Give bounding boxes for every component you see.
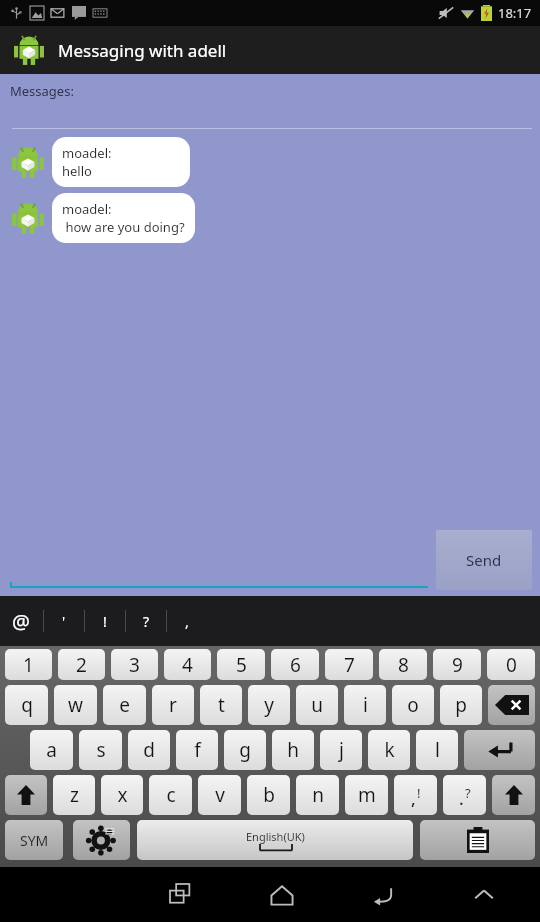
button[interactable]: u (296, 685, 338, 725)
staticText: h (287, 737, 299, 763)
button[interactable]: j (320, 730, 362, 770)
staticText: @ (12, 608, 30, 635)
button[interactable]: k (368, 730, 410, 770)
button[interactable]: x (101, 775, 143, 815)
button[interactable]: 8 (379, 649, 427, 680)
staticText: p (455, 692, 467, 718)
button[interactable]: Clipboard (420, 820, 535, 860)
button[interactable]: , (180, 612, 194, 631)
button[interactable]: m (345, 775, 388, 815)
staticText: u (311, 692, 323, 718)
staticText: g (239, 737, 251, 763)
staticText: n (312, 782, 324, 808)
staticText: a (46, 737, 57, 763)
staticText: w (68, 692, 83, 718)
button[interactable]: l (416, 730, 458, 770)
staticText: 0 (506, 652, 517, 678)
button[interactable]: r (152, 685, 194, 725)
button[interactable]: Settings (73, 820, 130, 860)
button[interactable]: f (176, 730, 218, 770)
staticText: 1 (23, 652, 34, 678)
button[interactable]: n (296, 775, 339, 815)
staticText: SYM (20, 831, 49, 850)
button[interactable]: 2 (58, 649, 105, 680)
staticText: z (70, 782, 79, 808)
button[interactable]: 1 (5, 649, 52, 680)
staticText: moadel: (62, 144, 112, 162)
button[interactable]: Recents (130, 867, 231, 922)
button[interactable]: ? (139, 612, 153, 631)
staticText: 3 (129, 652, 140, 678)
staticText: m (358, 782, 376, 808)
button[interactable]: Shift (5, 775, 47, 815)
staticText: y (264, 692, 274, 718)
button[interactable]: 5 (217, 649, 265, 680)
button[interactable]: h (272, 730, 314, 770)
button[interactable]: Expand (433, 867, 534, 922)
button[interactable]: c (149, 775, 192, 815)
staticText: ? (143, 612, 150, 631)
button[interactable]: Symbols (5, 820, 63, 860)
button[interactable]: s (79, 730, 122, 770)
button[interactable]: i (344, 685, 386, 725)
button[interactable]: y (248, 685, 290, 725)
button[interactable]: b (247, 775, 290, 815)
staticText: ! (103, 612, 107, 631)
staticText: , (411, 787, 416, 810)
button[interactable]: Shift (492, 775, 535, 815)
staticText: Messaging with adell (58, 39, 227, 62)
staticText: j (339, 737, 344, 763)
staticText: t (218, 692, 225, 718)
staticText: k (384, 737, 395, 763)
button[interactable]: Back (332, 867, 433, 922)
staticText: 4 (182, 652, 193, 678)
button[interactable]: Home (231, 867, 332, 922)
button[interactable]: q (5, 685, 48, 725)
button[interactable]: v (198, 775, 241, 815)
staticText: 8 (398, 652, 409, 678)
staticText: e (119, 692, 130, 718)
button[interactable]: ! (98, 612, 112, 631)
staticText: how are you doing? (62, 218, 185, 236)
staticText: l (435, 737, 440, 763)
button[interactable]: z (53, 775, 95, 815)
button[interactable]: e (103, 685, 146, 725)
button[interactable]: 0 (487, 649, 535, 680)
staticText: q (21, 692, 33, 718)
staticText: ? (465, 784, 471, 802)
staticText: moadel: (62, 200, 112, 218)
staticText: s (96, 737, 106, 763)
staticText: x (117, 782, 128, 808)
button[interactable]: 9 (433, 649, 481, 680)
button[interactable]: p (440, 685, 482, 725)
staticText: 7 (344, 652, 355, 678)
button[interactable]: d (128, 730, 170, 770)
staticText: 18:17 (498, 4, 532, 22)
staticText: 9 (452, 652, 463, 678)
button[interactable]: t (200, 685, 242, 725)
button[interactable]: g (224, 730, 266, 770)
staticText: i (363, 692, 368, 718)
button[interactable]: Enter (464, 730, 535, 770)
staticText: hello (62, 162, 92, 180)
staticText: English(UK) (246, 829, 305, 844)
button[interactable]: 6 (271, 649, 319, 680)
button[interactable]: , (394, 775, 437, 815)
button[interactable]: o (392, 685, 434, 725)
button[interactable]: 4 (164, 649, 211, 680)
button[interactable]: 3 (111, 649, 158, 680)
button[interactable]: @ (12, 608, 30, 635)
staticText: 2 (76, 652, 87, 678)
button[interactable]: a (30, 730, 73, 770)
staticText: r (169, 692, 177, 718)
button[interactable]: English(UK) (137, 820, 413, 860)
button[interactable]: Backspace (488, 685, 535, 725)
button[interactable]: 7 (325, 649, 373, 680)
button[interactable]: w (54, 685, 97, 725)
staticText: . (459, 787, 464, 810)
button[interactable]: . (443, 775, 486, 815)
staticText: Send (466, 550, 502, 570)
staticText: v (215, 782, 225, 808)
button[interactable]: ' (57, 612, 71, 631)
button[interactable]: Send (436, 530, 532, 590)
